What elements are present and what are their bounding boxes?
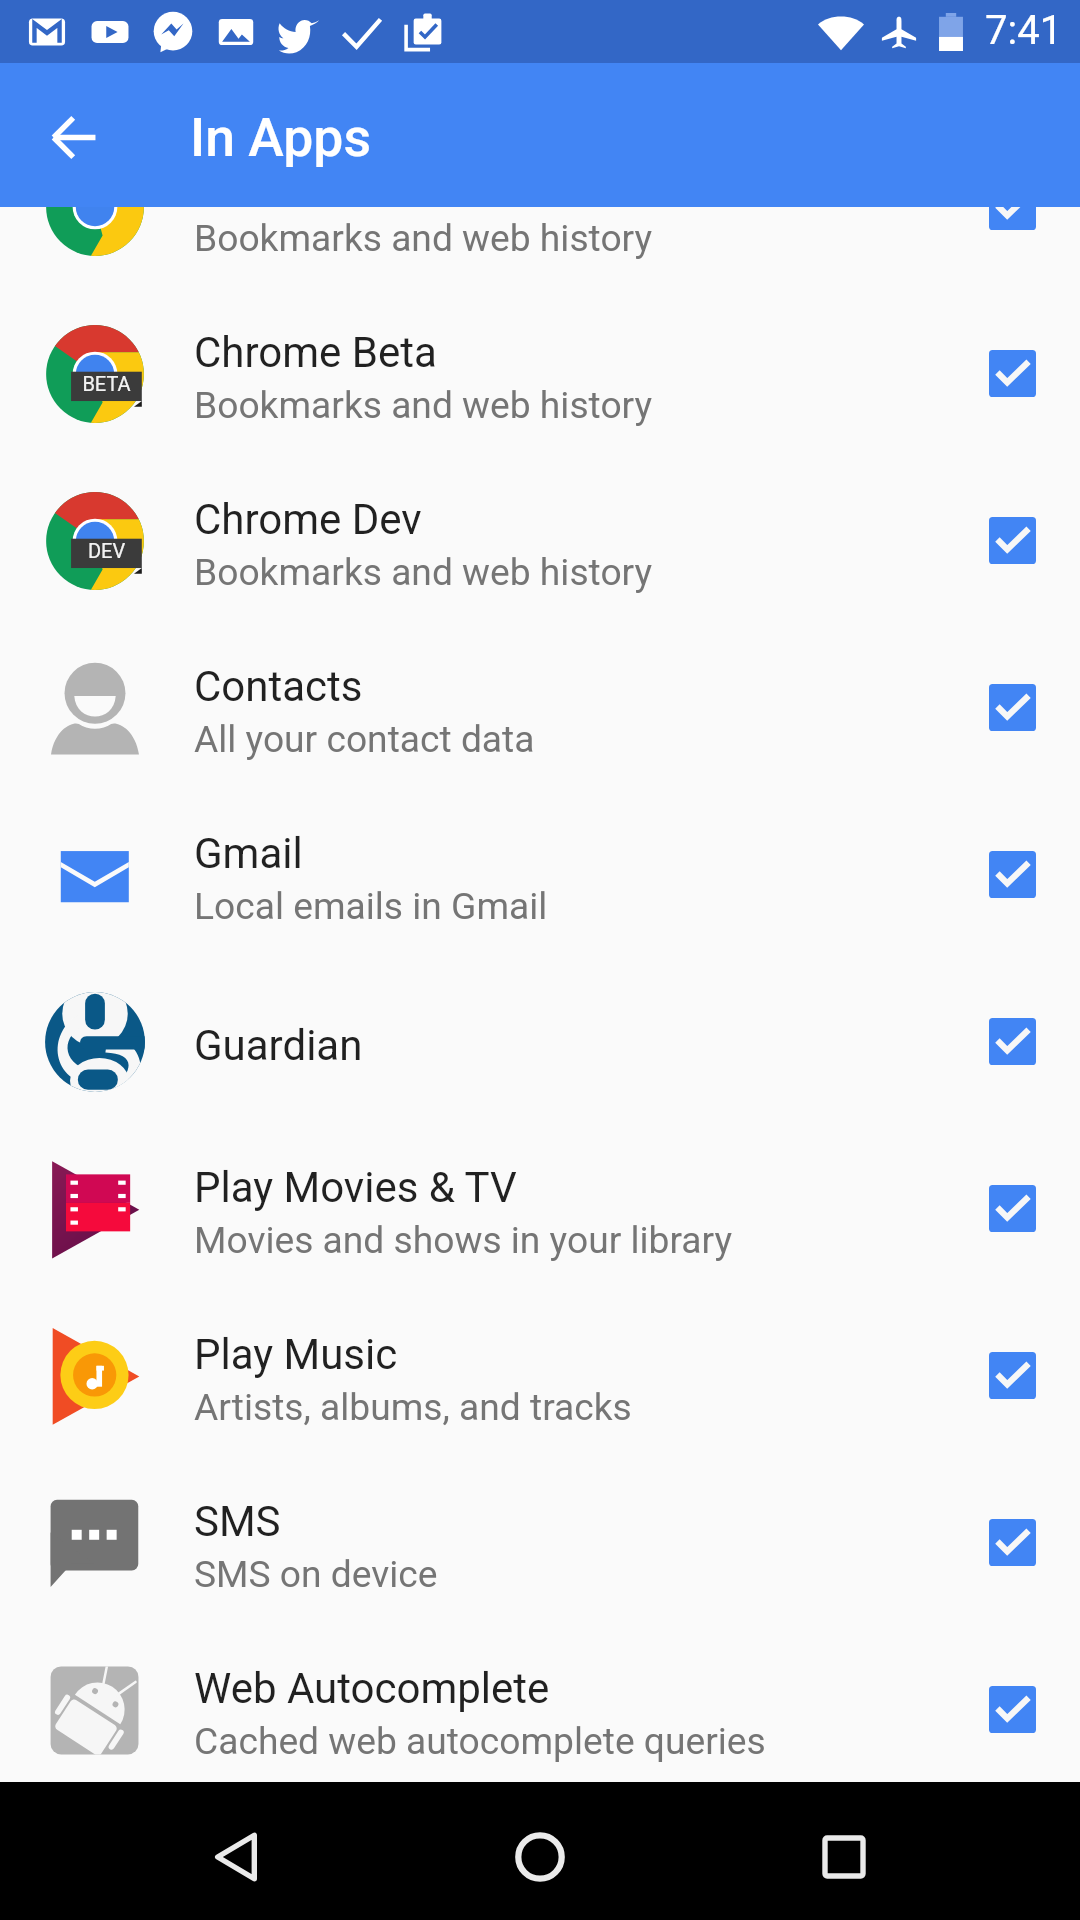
staticText: SMS <box>194 1497 281 1546</box>
button[interactable]: Enabled <box>989 1185 1036 1232</box>
button[interactable]: BETA <box>0 290 1080 457</box>
button[interactable]: Enabled <box>989 684 1036 731</box>
button[interactable]: Back <box>181 1802 291 1912</box>
button[interactable]: Contacts <box>0 624 1080 791</box>
button[interactable]: Enabled <box>989 1352 1036 1399</box>
button[interactable]: Chrome <box>0 207 1080 290</box>
staticText: SMS on device <box>194 1552 438 1596</box>
button[interactable]: Home <box>485 1802 595 1912</box>
staticText: Bookmarks and web history <box>194 216 653 260</box>
staticText: BETA <box>71 372 142 395</box>
button[interactable]: Enabled <box>989 350 1036 397</box>
button[interactable]: Guardian <box>0 958 1080 1125</box>
button[interactable]: Enabled <box>989 1686 1036 1733</box>
staticText: Bookmarks and web history <box>194 550 653 594</box>
staticText: Play Movies & TV <box>194 1163 517 1212</box>
staticText: DEV <box>71 539 142 562</box>
staticText: Gmail <box>194 829 303 878</box>
button[interactable]: Play Movies & TV <box>0 1125 1080 1292</box>
staticText: Chrome Dev <box>194 495 422 544</box>
staticText: Play Music <box>194 1330 398 1379</box>
staticText: Guardian <box>194 1021 363 1070</box>
button[interactable]: Navigate up <box>32 95 116 179</box>
button[interactable]: SMS <box>0 1459 1080 1626</box>
button[interactable]: Enabled <box>989 517 1036 564</box>
staticText: Local emails in Gmail <box>194 884 548 928</box>
button[interactable]: Play Music <box>0 1292 1080 1459</box>
staticText: Chrome Beta <box>194 328 437 377</box>
button[interactable]: Enabled <box>989 207 1036 230</box>
button[interactable]: Enabled <box>989 1018 1036 1065</box>
staticText: Bookmarks and web history <box>194 383 653 427</box>
button[interactable]: Gmail <box>0 791 1080 958</box>
staticText: In Apps <box>190 106 371 169</box>
button[interactable]: DEV <box>0 457 1080 624</box>
button[interactable]: Enabled <box>989 851 1036 898</box>
staticText: Contacts <box>194 662 363 711</box>
staticText: 7:41 <box>985 7 1063 54</box>
button[interactable]: Web Autocomplete <box>0 1626 1080 1782</box>
staticText: All your contact data <box>194 717 535 761</box>
button[interactable]: Enabled <box>989 1519 1036 1566</box>
staticText: Web Autocomplete <box>194 1664 550 1713</box>
staticText: Artists, albums, and tracks <box>194 1385 632 1429</box>
staticText: Cached web autocomplete queries <box>194 1719 766 1763</box>
staticText: Movies and shows in your library <box>194 1218 733 1262</box>
button[interactable]: Recent apps <box>789 1802 899 1912</box>
